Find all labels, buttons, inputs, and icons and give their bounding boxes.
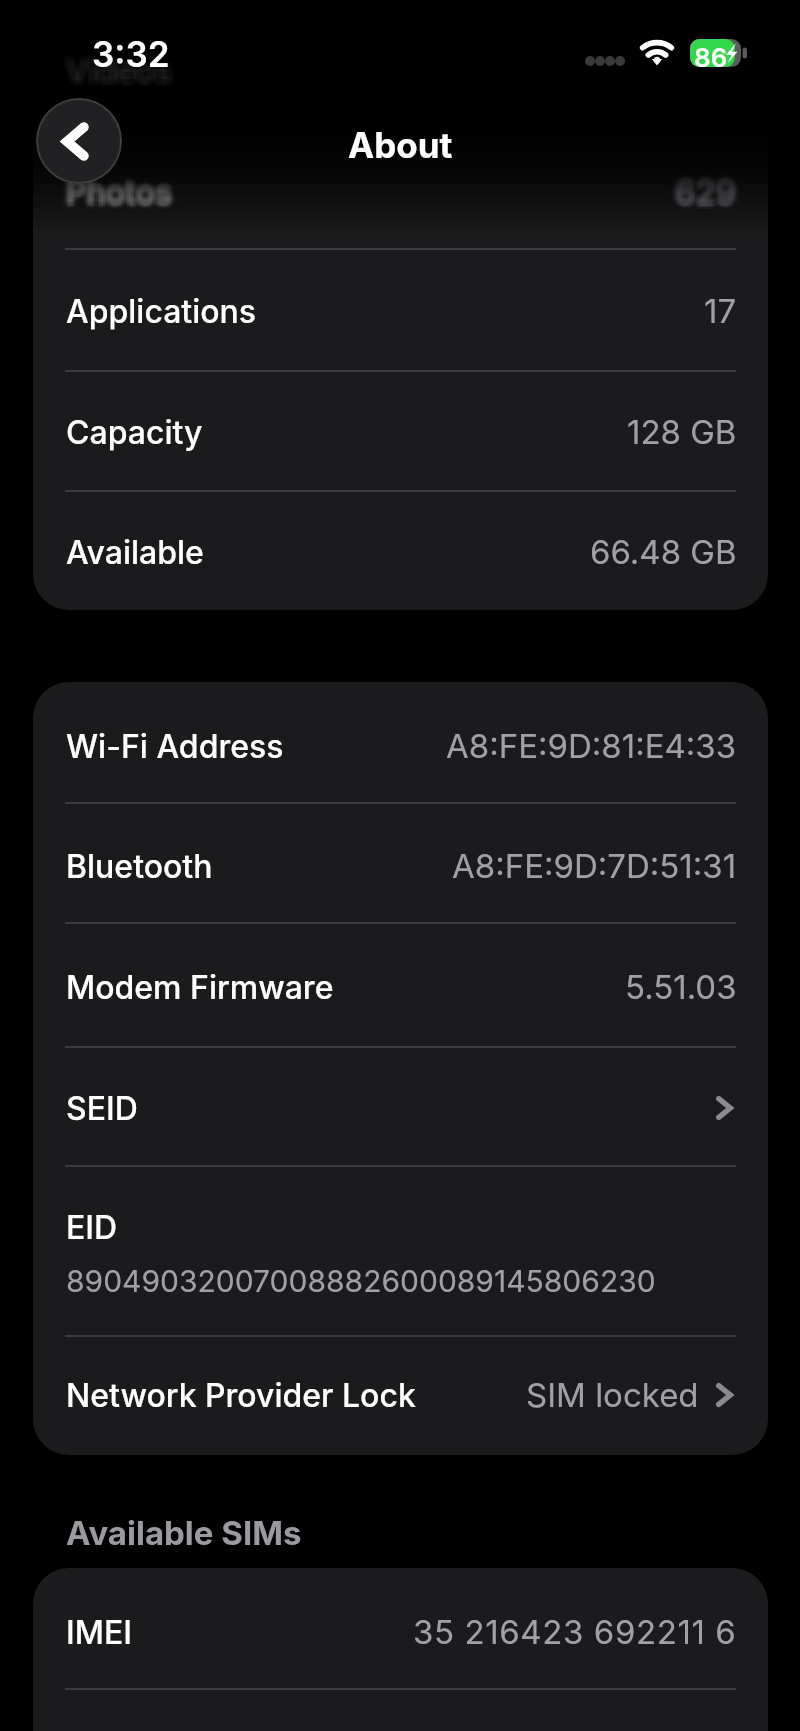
staticText: Videos [68, 55, 174, 94]
staticText: 629 [671, 177, 733, 217]
staticText: Photos [72, 178, 179, 217]
staticText: 629 [673, 175, 735, 215]
staticText: Photos [60, 168, 167, 207]
staticText: Photos [67, 178, 174, 217]
button[interactable]: Capacity [33, 372, 768, 492]
staticText: Photos [62, 176, 169, 215]
staticText: EID [66, 1208, 118, 1247]
staticText: Photos [64, 176, 171, 215]
staticText: 629 [669, 167, 731, 207]
staticText: Photos [65, 170, 172, 209]
staticText: Photos [60, 173, 167, 212]
staticText: Photos [72, 171, 179, 210]
staticText: 629 [673, 167, 735, 207]
staticText: 629 [674, 177, 736, 217]
staticText: Videos [68, 49, 174, 88]
staticText: 629 [674, 175, 736, 215]
staticText: 629 [669, 172, 731, 212]
staticText: 629 [679, 167, 741, 207]
staticText: 3:32 [92, 33, 170, 75]
staticText: 629 [673, 170, 735, 210]
staticText: Applications [66, 292, 257, 331]
staticText: 629 [677, 172, 739, 212]
staticText: Videos [66, 52, 172, 91]
staticText: Videos [64, 52, 170, 91]
staticText: Photos [62, 170, 169, 209]
staticText: Photos [68, 175, 175, 214]
button[interactable]: Network Provider Lock [33, 1335, 768, 1455]
staticText: Photos [72, 170, 179, 209]
staticText: Photos [64, 171, 171, 210]
staticText: Photos [60, 176, 167, 215]
staticText: Photos [68, 168, 175, 207]
button[interactable]: Available [33, 492, 768, 610]
staticText: Modem Firmware [66, 968, 334, 1007]
button[interactable]: SEID [33, 1048, 768, 1168]
staticText: SIM locked [526, 1375, 699, 1415]
staticText: 629 [676, 177, 738, 217]
button[interactable]: Modem Firmware [33, 927, 768, 1047]
staticText: 629 [676, 174, 738, 214]
button[interactable]: Photos [33, 132, 768, 252]
staticText: Photos [68, 171, 175, 210]
staticText: Photos [65, 178, 172, 217]
staticText: 629 [681, 170, 743, 210]
staticText: Photos [70, 168, 177, 207]
staticText: Available SIMs [66, 1513, 302, 1553]
button[interactable]: Back [36, 98, 122, 184]
staticText: Videos [70, 55, 176, 94]
staticText: Photos [70, 173, 177, 212]
staticText: 629 [677, 174, 739, 214]
staticText: 629 [677, 175, 739, 215]
staticText: 629 [673, 169, 735, 209]
staticText: Videos [62, 55, 168, 94]
staticText: Photos [60, 170, 167, 209]
button[interactable]: Bluetooth [33, 806, 768, 926]
staticText: Photos [68, 170, 175, 209]
staticText: Photos [64, 170, 171, 209]
button[interactable]: Wi-Fi Address [33, 686, 768, 806]
staticText: Photos [65, 173, 172, 212]
staticText: 629 [671, 170, 733, 210]
staticText: 629 [674, 174, 736, 214]
staticText: 17 [704, 291, 737, 331]
staticText: 629 [676, 172, 738, 212]
staticText: 629 [669, 170, 731, 210]
staticText: Photos [60, 178, 167, 217]
staticText: 629 [679, 174, 741, 214]
staticText: Bluetooth [66, 847, 213, 886]
button[interactable]: EID [33, 1165, 768, 1335]
staticText: Available [66, 533, 204, 572]
staticText: 629 [671, 169, 733, 209]
button[interactable]: IMEI [33, 1572, 768, 1692]
staticText: 629 [673, 172, 735, 212]
staticText: Photos [68, 178, 175, 217]
staticText: Photos [62, 171, 169, 210]
button[interactable]: Applications [33, 251, 768, 371]
staticText: 35 216423 692211 6 [413, 1612, 737, 1652]
staticText: 128 GB [627, 412, 737, 452]
staticText: 629 [681, 174, 743, 214]
staticText: 629 [679, 170, 741, 210]
staticText: 629 [669, 177, 731, 217]
staticText: Photos [64, 178, 171, 217]
staticText: Photos [62, 178, 169, 217]
staticText: IMEI [66, 1613, 132, 1652]
staticText: 629 [681, 167, 743, 207]
staticText: 629 [681, 175, 743, 215]
staticText: Videos [70, 52, 176, 91]
staticText: Photos [68, 176, 175, 215]
staticText: 629 [673, 174, 735, 214]
staticText: 629 [677, 169, 739, 209]
staticText: A8:FE:9D:7D:51:31 [452, 846, 737, 886]
staticText: Photos [65, 171, 172, 210]
staticText: Photos [70, 171, 177, 210]
staticText: 5.51.03 [625, 967, 737, 1007]
staticText: Photos [62, 175, 169, 214]
staticText: Photos [72, 176, 179, 215]
staticText: Photos [67, 176, 174, 215]
staticText: 629 [681, 177, 743, 217]
staticText: 629 [671, 172, 733, 212]
staticText: Photos [67, 171, 174, 210]
staticText: 629 [669, 169, 731, 209]
